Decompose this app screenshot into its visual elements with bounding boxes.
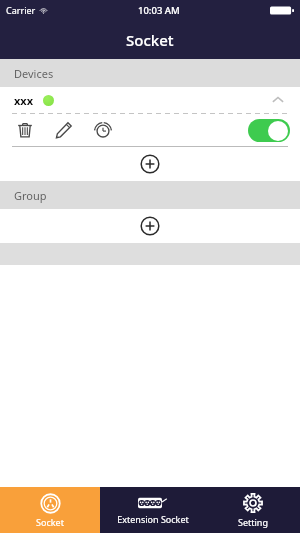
button[interactable]: Power toggle on (248, 119, 290, 142)
other: Collapse (270, 92, 286, 108)
staticText: Carrier (6, 4, 36, 16)
staticText: Setting (238, 516, 268, 528)
staticText: xxx (14, 93, 34, 108)
button[interactable]: Add (139, 153, 161, 175)
button[interactable]: Delete (14, 119, 36, 141)
staticText: Devices (14, 66, 54, 81)
button[interactable]: xxx (0, 87, 300, 113)
staticText: Socket (126, 30, 174, 50)
staticText: 10:03 AM (138, 4, 180, 17)
button[interactable]: Edit (53, 119, 75, 141)
staticText: Extension Socket (117, 513, 189, 525)
button[interactable]: Extension Socket (100, 487, 206, 533)
staticText: Group (14, 188, 47, 203)
button[interactable]: Timer (92, 119, 114, 141)
button[interactable]: Setting (206, 487, 300, 533)
staticText: Socket (36, 516, 64, 528)
button[interactable]: Socket (0, 487, 100, 533)
button[interactable]: Add (139, 215, 161, 237)
